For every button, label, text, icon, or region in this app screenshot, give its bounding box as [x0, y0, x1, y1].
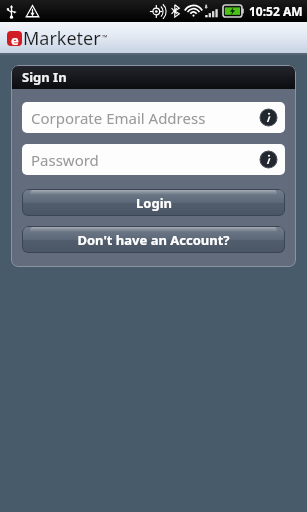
staticText: Login: [136, 194, 172, 212]
button[interactable]: Login: [22, 189, 285, 216]
staticText: Marketer: [23, 26, 101, 51]
button[interactable]: Information about Password: [260, 151, 277, 168]
staticText: Don't have an Account?: [77, 231, 230, 249]
staticText: Sign In: [22, 68, 67, 86]
staticText: Password: [31, 150, 99, 170]
button[interactable]: Password: [22, 144, 285, 175]
staticText: e: [11, 31, 19, 46]
staticText: 10:52 AM: [249, 3, 303, 19]
button[interactable]: Corporate Email Address: [22, 102, 285, 133]
staticText: ™: [102, 33, 108, 43]
button[interactable]: Don't have an Account?: [22, 226, 285, 253]
staticText: Corporate Email Address: [31, 108, 206, 128]
button[interactable]: Information about Corporate Email Addres…: [260, 109, 277, 126]
